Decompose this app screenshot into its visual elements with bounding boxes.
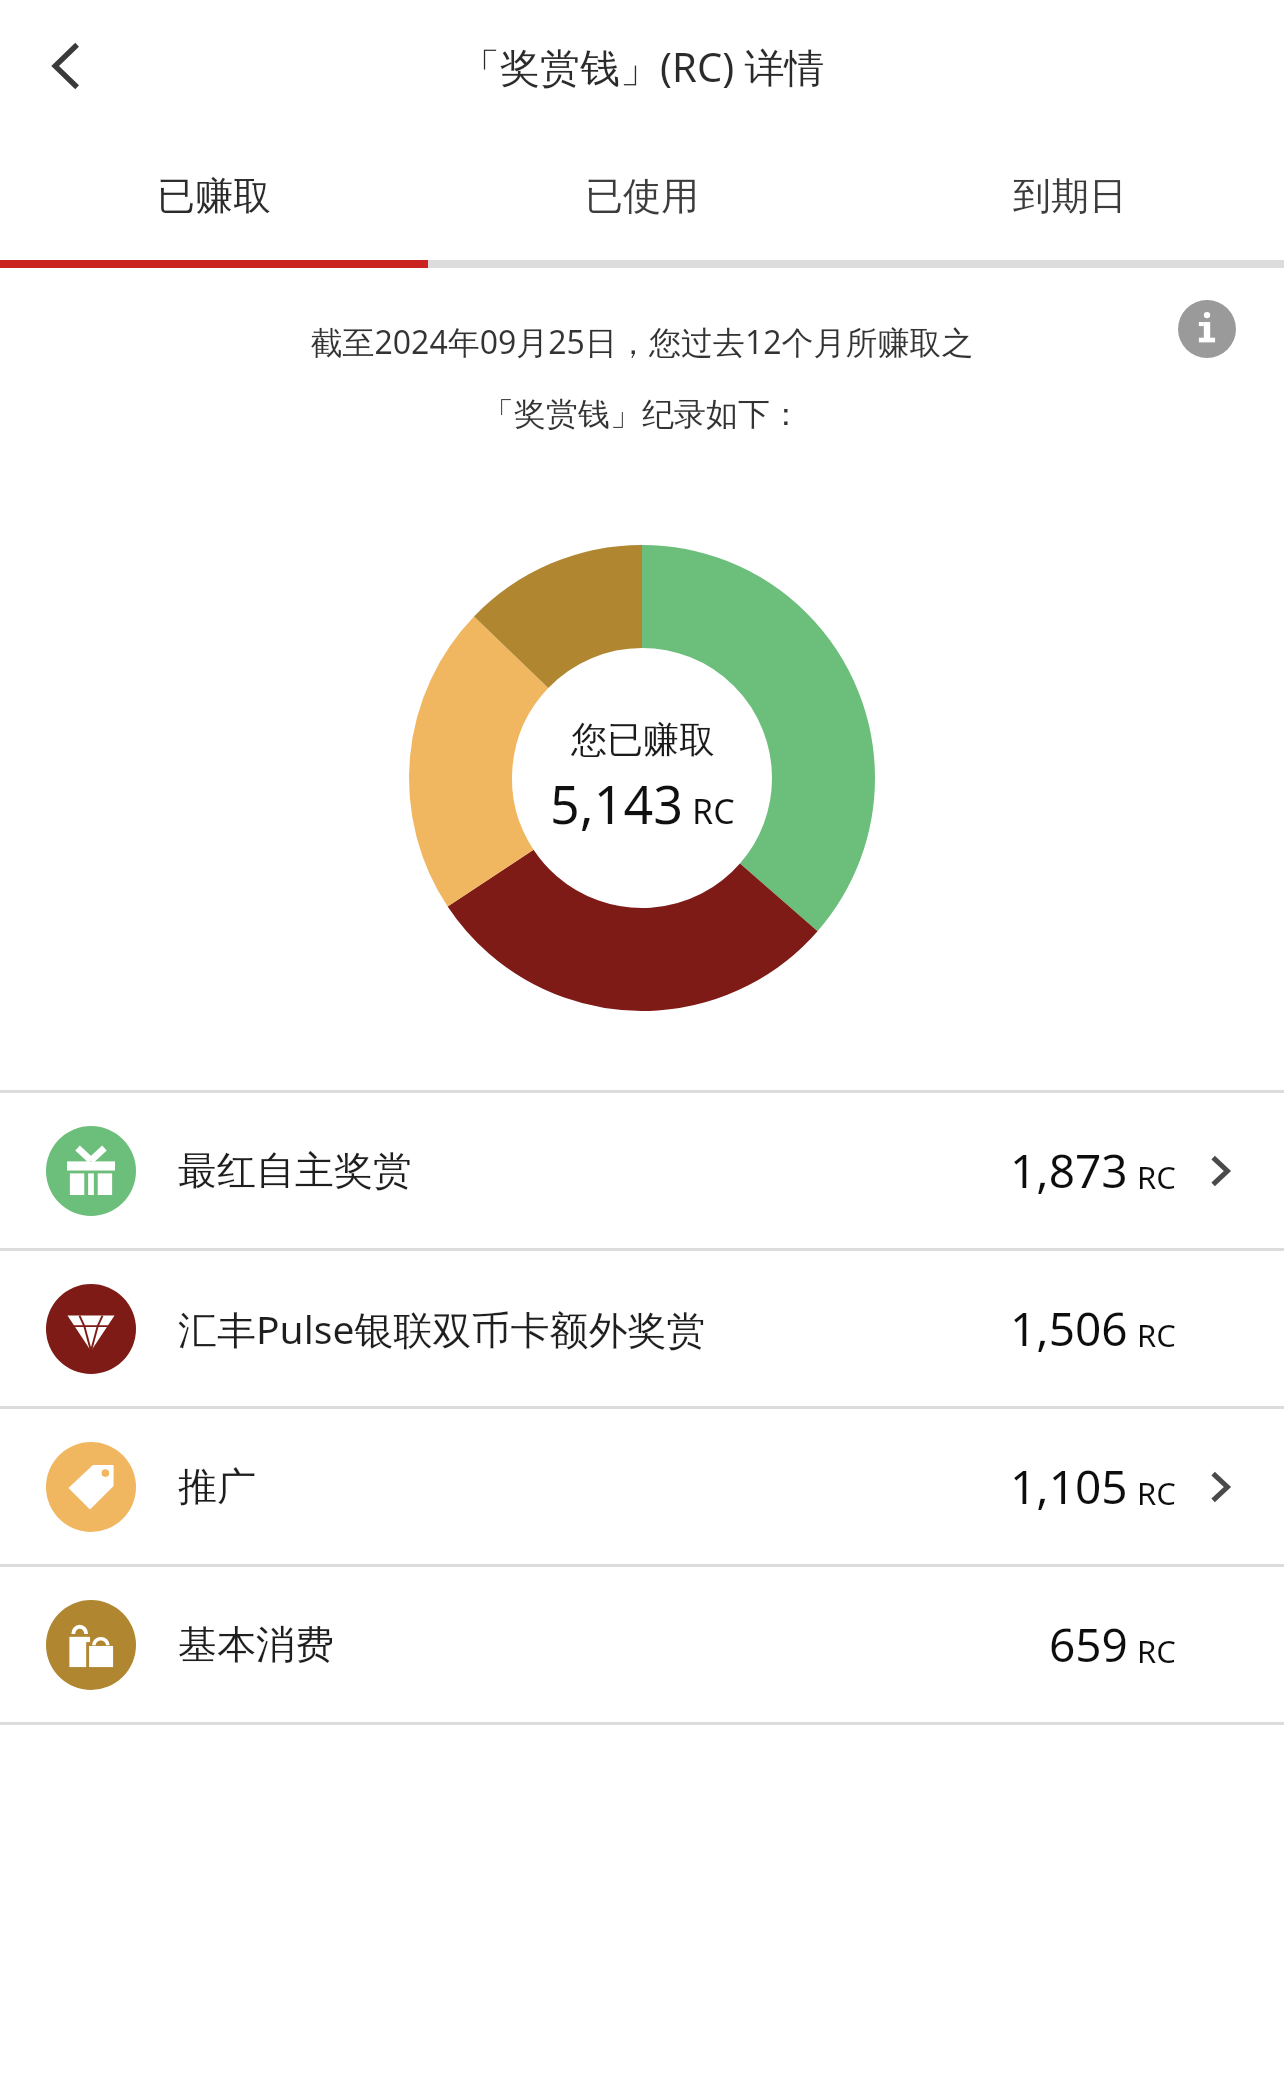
staticText: RC <box>1137 1630 1176 1672</box>
staticText: 到期日 <box>1013 172 1127 220</box>
staticText: 「奖赏钱」纪录如下： <box>482 394 802 434</box>
staticText: 1,873 <box>1010 1139 1128 1202</box>
staticText: 汇丰Pulse银联双币卡额外奖赏 <box>178 1302 706 1355</box>
staticText: RC <box>1137 1314 1176 1356</box>
staticText: 推广 <box>178 1462 256 1511</box>
button[interactable]: 基本消费 <box>0 1567 1284 1722</box>
staticText: 已使用 <box>585 172 699 220</box>
staticText: 1,506 <box>1010 1297 1128 1360</box>
staticText: RC <box>692 788 735 834</box>
staticText: RC <box>1137 1472 1176 1514</box>
button[interactable]: 汇丰Pulse银联双币卡额外奖赏 <box>0 1251 1284 1406</box>
staticText: 5,143 <box>550 768 683 839</box>
button[interactable]: Information <box>1178 300 1236 358</box>
staticText: 659 <box>1049 1613 1128 1676</box>
button[interactable]: 推广 <box>0 1409 1284 1564</box>
button[interactable]: 到期日 <box>856 132 1284 260</box>
button[interactable]: 已使用 <box>428 132 856 260</box>
button[interactable]: Back <box>30 28 106 104</box>
staticText: 基本消费 <box>178 1620 334 1669</box>
staticText: 「奖赏钱」(RC) 详情 <box>460 39 825 94</box>
button[interactable]: 最红自主奖赏 <box>0 1093 1284 1248</box>
staticText: RC <box>1137 1156 1176 1198</box>
staticText: 已赚取 <box>157 172 271 220</box>
staticText: 最红自主奖赏 <box>178 1146 412 1195</box>
button[interactable]: 已赚取 <box>0 132 428 260</box>
staticText: 您已赚取 <box>571 717 715 762</box>
staticText: 1,105 <box>1010 1455 1128 1518</box>
staticText: 截至2024年09月25日，您过去12个月所赚取之 <box>310 320 974 364</box>
